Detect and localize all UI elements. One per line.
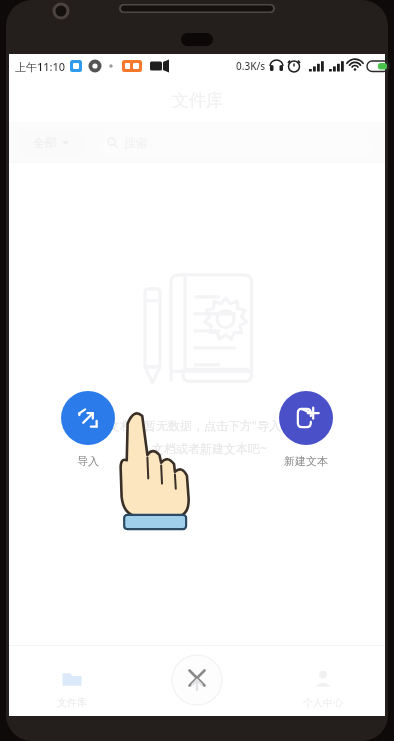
button[interactable]: 新建文本 bbox=[279, 391, 333, 468]
staticText: 上午11:10 bbox=[15, 59, 66, 74]
staticText: 导入 bbox=[77, 454, 99, 468]
staticText: 文档库暂无数据，点击下方"导入" bbox=[108, 417, 286, 433]
staticText: 文件库 bbox=[172, 90, 223, 111]
staticText: 文件库 bbox=[57, 696, 87, 709]
staticText: 搜索 bbox=[124, 135, 148, 150]
staticText: 导入文档或者新建文本吧~ bbox=[128, 440, 267, 456]
staticText: 新建文本 bbox=[284, 454, 328, 468]
button[interactable]: 文件库 bbox=[9, 646, 135, 716]
staticText: 全部 bbox=[33, 135, 57, 150]
button[interactable]: 关闭 bbox=[171, 654, 223, 706]
staticText: 0.3K/s bbox=[236, 59, 266, 73]
staticText: 个人中心 bbox=[303, 696, 343, 709]
other: 导入 bbox=[76, 406, 100, 430]
other: 新建文本 bbox=[294, 406, 318, 430]
button[interactable]: 导入 bbox=[61, 391, 115, 468]
